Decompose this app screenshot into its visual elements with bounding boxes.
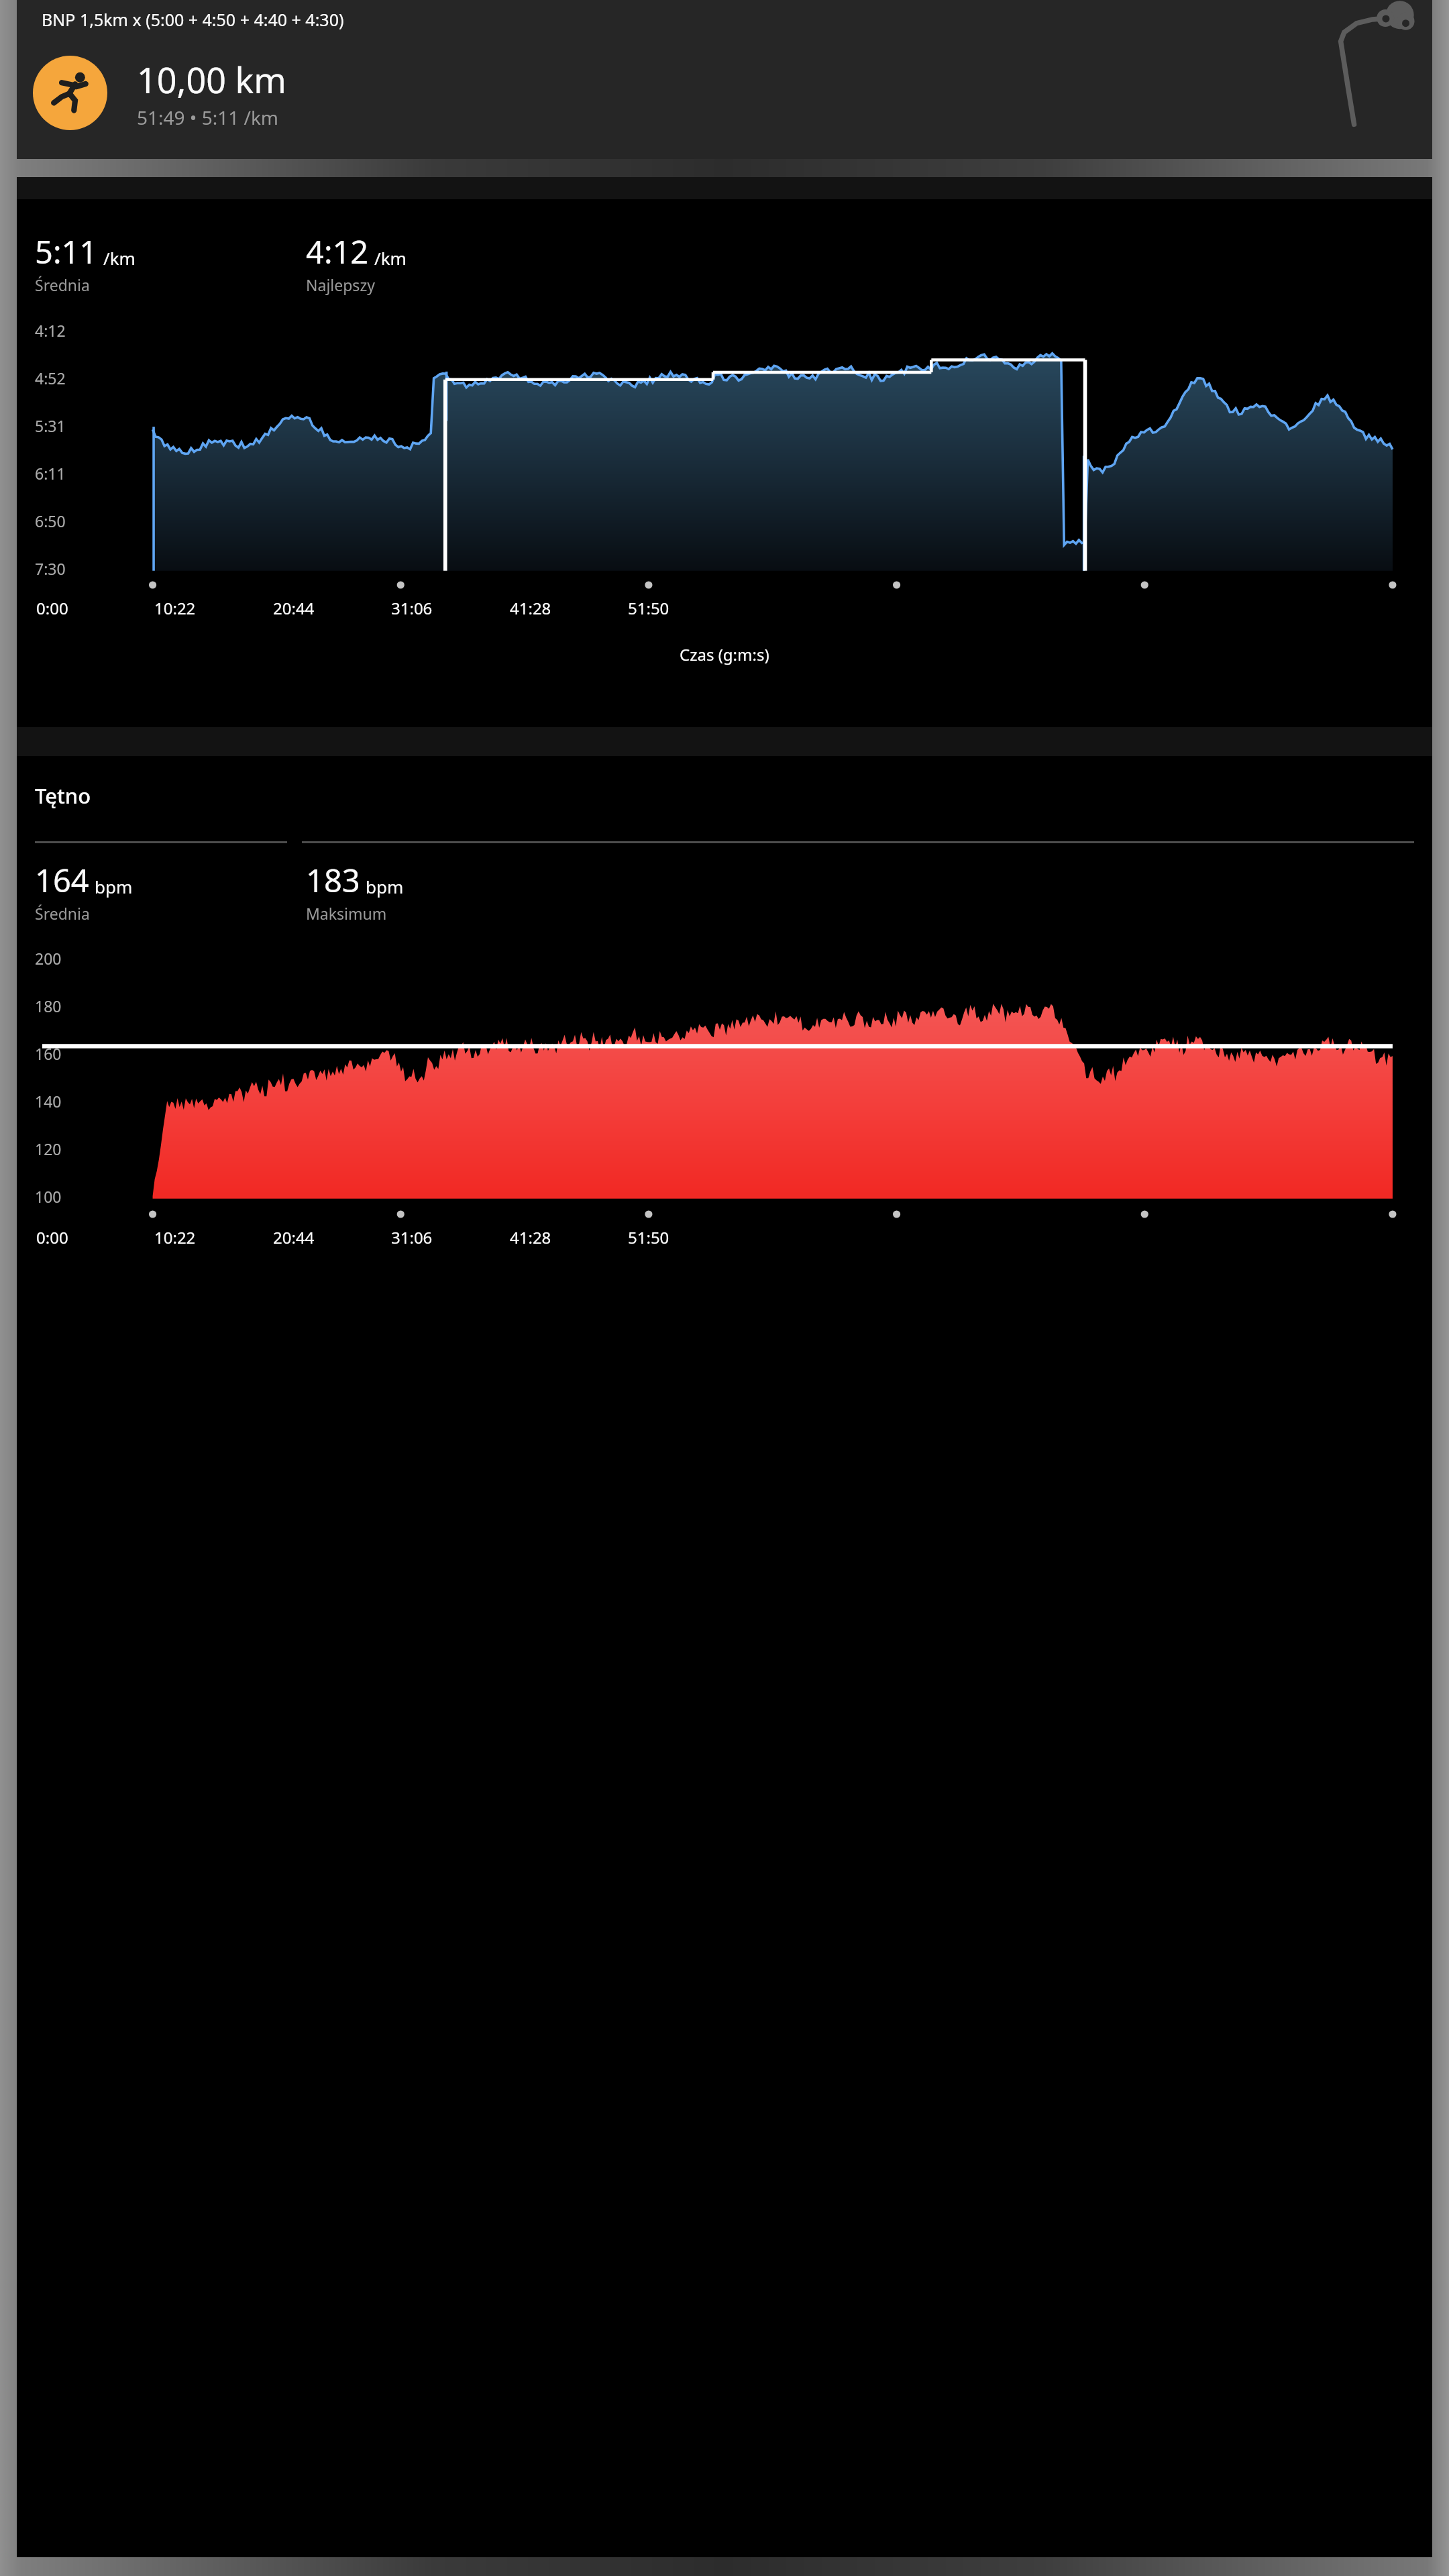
staticText: 200 [35,948,62,969]
staticText: 4:52 [35,368,66,388]
staticText: 51:50 [628,1226,669,1248]
staticText: 20:44 [273,597,315,619]
staticText: 51:49 • 5:11 /km [137,105,279,130]
staticText: 20:44 [273,1226,315,1248]
other: Running activity [33,56,107,130]
staticText: 6:11 [35,463,66,484]
staticText: 6:50 [35,511,66,531]
staticText: 10:22 [154,1226,196,1248]
staticText: 100 [35,1186,62,1207]
staticText: 160 [35,1043,62,1064]
staticText: 4:12 [306,230,369,273]
staticText: /km [374,246,407,270]
button[interactable]: Tętno [17,727,1432,2557]
staticText: 120 [35,1138,62,1159]
staticText: 7:30 [35,558,66,579]
staticText: bpm [95,875,133,898]
staticText: Czas (g:m:s) [680,643,769,665]
button[interactable]: BNP 1,5km x (5:00 + 4:50 + 4:40 + 4:30) [17,0,1432,159]
staticText: 5:11 [35,230,98,273]
staticText: /km [103,246,136,270]
staticText: 31:06 [391,1226,433,1248]
staticText: Średnia [35,903,90,924]
staticText: 180 [35,996,62,1016]
other: Route map [1321,2,1420,131]
staticText: Maksimum [306,903,387,924]
staticText: 4:12 [35,320,66,341]
staticText: 164 [35,859,89,902]
staticText: 10,00 km [137,56,286,103]
staticText: Najlepszy [306,274,375,295]
staticText: 5:31 [35,415,66,436]
staticText: Średnia [35,274,90,295]
staticText: 0:00 [36,597,68,619]
staticText: 51:50 [628,597,669,619]
staticText: 31:06 [391,597,433,619]
staticText: BNP 1,5km x (5:00 + 4:50 + 4:40 + 4:30) [42,8,344,31]
staticText: Tętno [35,782,91,810]
staticText: 41:28 [510,1226,551,1248]
staticText: 140 [35,1091,62,1112]
staticText: bpm [366,875,404,898]
staticText: 10:22 [154,597,196,619]
staticText: 183 [306,859,360,902]
staticText: 0:00 [36,1226,68,1248]
button[interactable]: 5:11 [17,177,1432,727]
staticText: 41:28 [510,597,551,619]
